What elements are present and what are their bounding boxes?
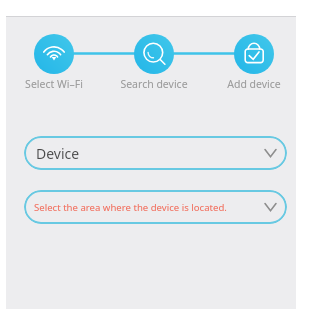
staticText: Select the area where the device is loca…: [34, 201, 227, 214]
button[interactable]: Device: [24, 136, 287, 170]
button[interactable]: Search device: [104, 34, 204, 91]
button[interactable]: Select the area where the device is loca…: [24, 190, 287, 224]
button[interactable]: Select Wi–Fi: [4, 34, 104, 91]
staticText: Add device: [227, 77, 281, 91]
staticText: Device: [36, 144, 80, 163]
staticText: Select Wi–Fi: [25, 77, 83, 91]
button[interactable]: Add device: [204, 34, 304, 91]
staticText: Search device: [120, 77, 188, 91]
